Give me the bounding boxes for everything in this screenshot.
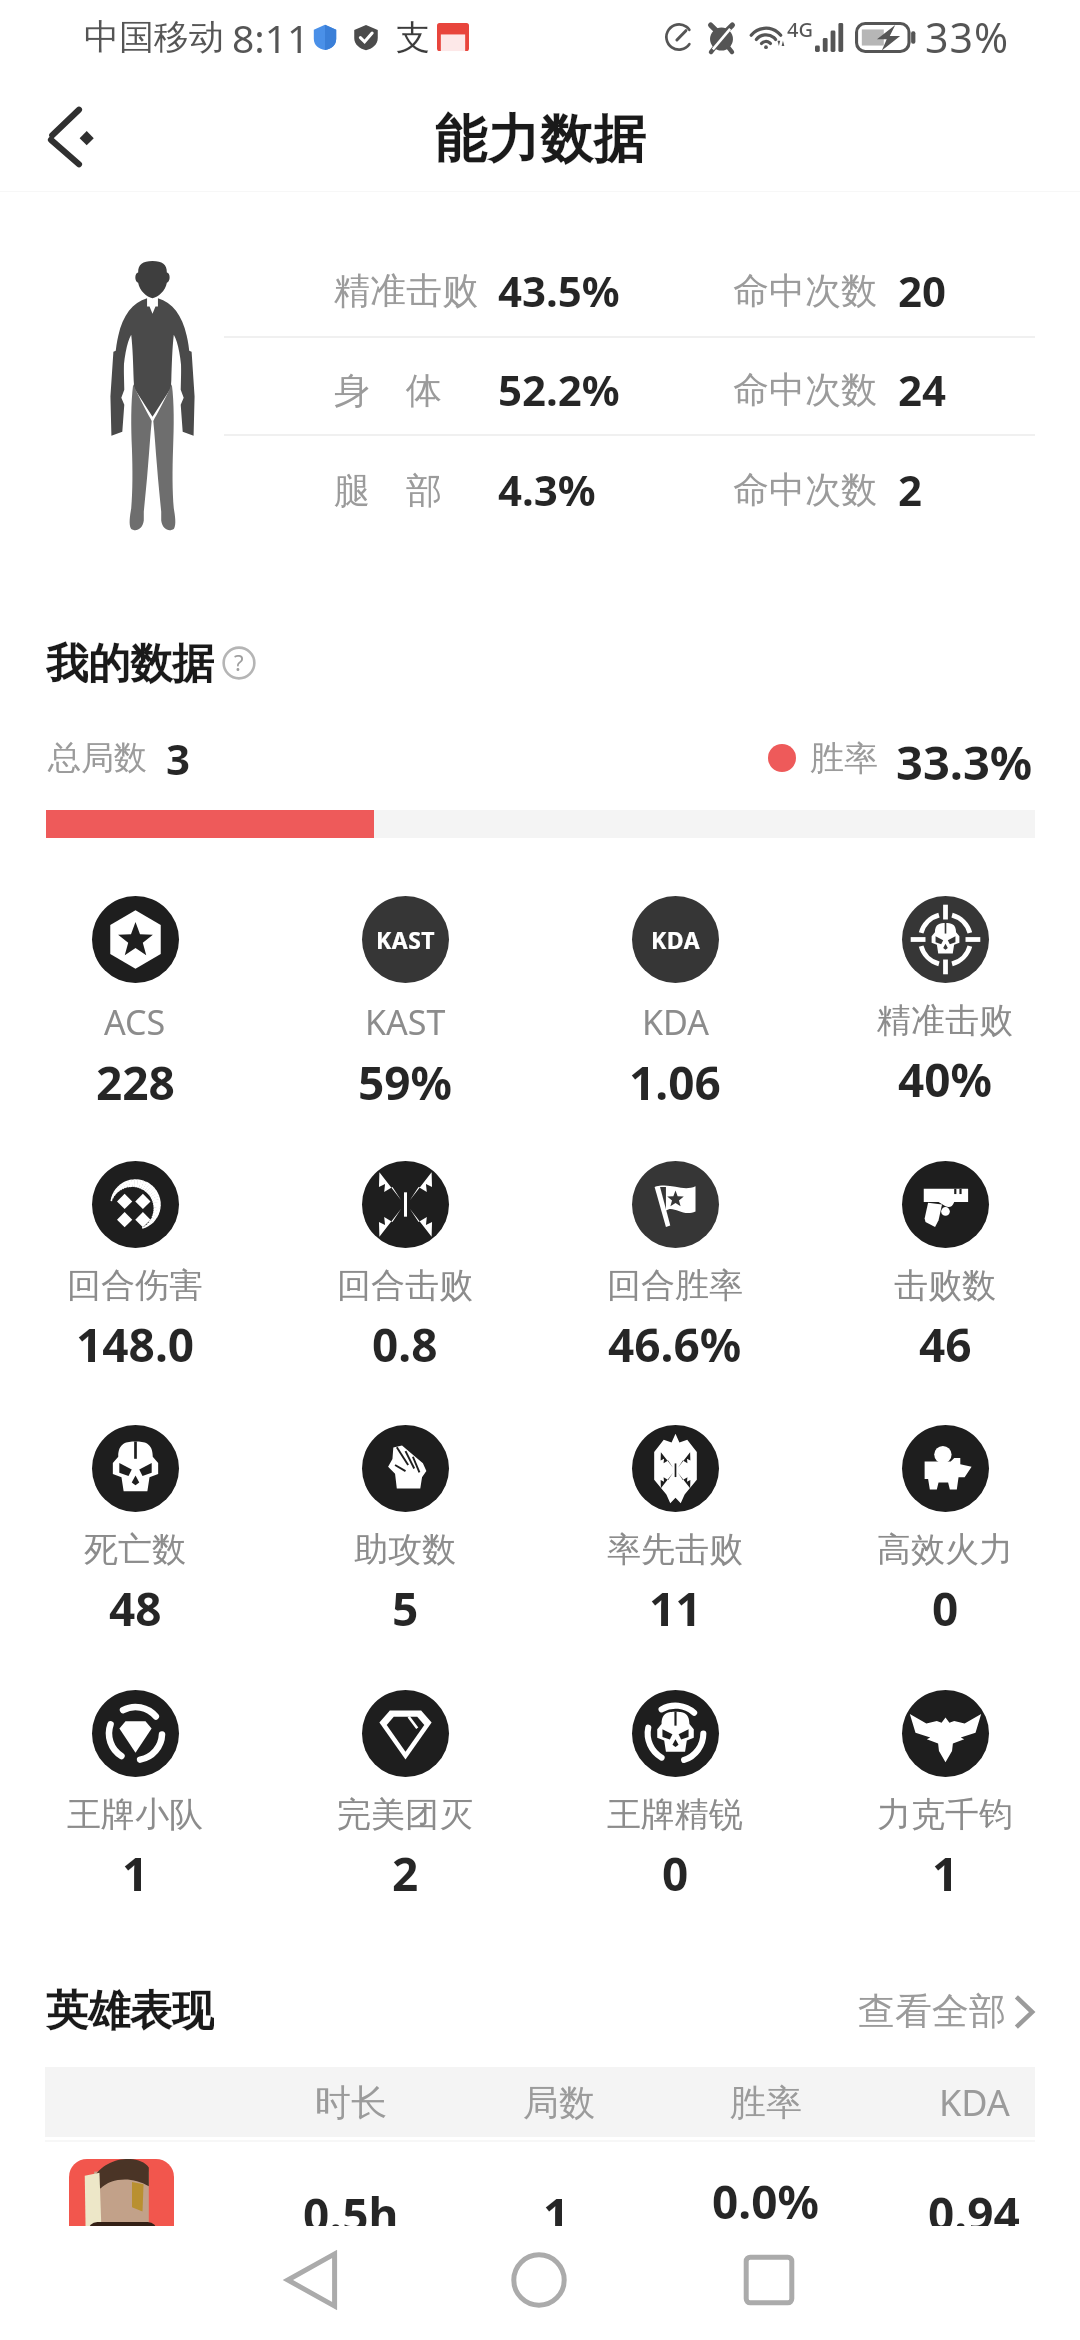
button[interactable]: KDA (540, 896, 810, 1126)
staticText: 2 (392, 1842, 419, 1905)
staticText: ACS (104, 999, 166, 1045)
staticText: 中国移动 (84, 15, 224, 59)
button[interactable]: 击败数 (810, 1161, 1080, 1391)
staticText: 8:11 (232, 11, 310, 64)
staticText: 精准击败 (334, 268, 478, 313)
staticText: 0.94 (928, 2182, 1020, 2245)
staticText: 王牌小队 (67, 1793, 203, 1836)
staticText: 33% (925, 9, 1009, 65)
button[interactable]: ACS (0, 896, 270, 1126)
staticText: 胜率 (810, 737, 878, 780)
staticText: 1.06 (629, 1051, 721, 1114)
button[interactable]: Home (509, 2250, 569, 2310)
staticText: 胜率 (730, 2080, 802, 2125)
staticText: 1 (932, 1842, 959, 1905)
staticText: 40% (898, 1048, 993, 1111)
staticText: 46.6% (608, 1313, 742, 1376)
staticText: KAST (365, 999, 446, 1045)
staticText: 完美团灭 (337, 1793, 473, 1836)
staticText: 英雄表现 (46, 1985, 214, 2037)
button[interactable]: 高效火力 (810, 1425, 1080, 1655)
button[interactable]: 力克千钧 (810, 1690, 1080, 1920)
staticText: 48 (109, 1577, 162, 1640)
staticText: 命中次数 (733, 268, 877, 313)
staticText: 力克千钧 (877, 1793, 1013, 1836)
staticText: 王牌精锐 (607, 1793, 743, 1836)
staticText: 击败数 (894, 1264, 996, 1307)
staticText: 2 (898, 461, 923, 518)
staticText: 0 (662, 1842, 689, 1905)
button[interactable]: 查看全部 (858, 1988, 1035, 2035)
staticText: 命中次数 (733, 367, 877, 412)
staticText: 148.0 (76, 1313, 195, 1376)
staticText: 0.8 (372, 1313, 438, 1376)
button[interactable]: 0.5h (0, 2137, 1080, 2252)
staticText: 0.0% (712, 2170, 820, 2233)
button[interactable]: 回合伤害 (0, 1161, 270, 1391)
staticText: 腿 部 (334, 465, 442, 514)
staticText: 死亡数 (84, 1528, 186, 1571)
staticText: 43.5% (498, 262, 620, 319)
staticText: 率先击败 (607, 1528, 743, 1571)
staticText: 局数 (523, 2080, 595, 2125)
staticText: 回合击败 (337, 1264, 473, 1307)
staticText: ? (234, 647, 244, 677)
staticText: 回合胜率 (607, 1264, 743, 1307)
staticText: 1 (543, 2183, 570, 2246)
staticText: 1 (122, 1842, 149, 1905)
staticText: 52.2% (498, 361, 620, 418)
button[interactable]: 死亡数 (0, 1425, 270, 1655)
button[interactable]: Recent apps (739, 2250, 799, 2310)
button[interactable]: Back (18, 93, 112, 187)
button[interactable]: Back (283, 2250, 343, 2310)
staticText: KAST (376, 924, 436, 955)
staticText: KDA (642, 999, 709, 1045)
staticText: 查看全部 (858, 1988, 1006, 2035)
staticText: 时长 (315, 2080, 387, 2125)
button[interactable]: 王牌小队 (0, 1690, 270, 1920)
button[interactable]: 回合击败 (270, 1161, 540, 1391)
staticText: 24 (898, 361, 947, 418)
staticText: 46 (919, 1313, 972, 1376)
staticText: 0.5h (303, 2183, 399, 2246)
staticText: 4.3% (498, 461, 596, 518)
button[interactable]: Help (223, 647, 255, 679)
staticText: 228 (96, 1051, 175, 1114)
staticText: 33.3% (896, 730, 1033, 786)
staticText: 高效火力 (877, 1528, 1013, 1571)
staticText: 5 (392, 1577, 419, 1640)
staticText: 身 体 (334, 365, 442, 414)
staticText: 11 (649, 1577, 702, 1640)
button[interactable]: 率先击败 (540, 1425, 810, 1655)
staticText: KDA (651, 924, 701, 955)
staticText: 我的数据 (46, 638, 214, 688)
staticText: 3 (166, 730, 191, 786)
staticText: 总局数 (48, 737, 147, 779)
staticText: 精准击败 (877, 999, 1013, 1042)
staticText: 0 (932, 1577, 959, 1640)
staticText: 助攻数 (354, 1528, 456, 1571)
staticText: 能力数据 (434, 107, 646, 173)
staticText: 命中次数 (733, 467, 877, 512)
button[interactable]: 精准击败 (810, 896, 1080, 1126)
staticText: 支 (396, 16, 430, 59)
staticText: 回合伤害 (67, 1264, 203, 1307)
button[interactable]: 助攻数 (270, 1425, 540, 1655)
button[interactable]: KAST (270, 896, 540, 1126)
staticText: 20 (898, 262, 947, 319)
button[interactable]: 王牌精锐 (540, 1690, 810, 1920)
staticText: KDA (939, 2078, 1010, 2127)
staticText: 4G (787, 16, 813, 43)
button[interactable]: 回合胜率 (540, 1161, 810, 1391)
staticText: 59% (358, 1051, 453, 1114)
button[interactable]: 完美团灭 (270, 1690, 540, 1920)
